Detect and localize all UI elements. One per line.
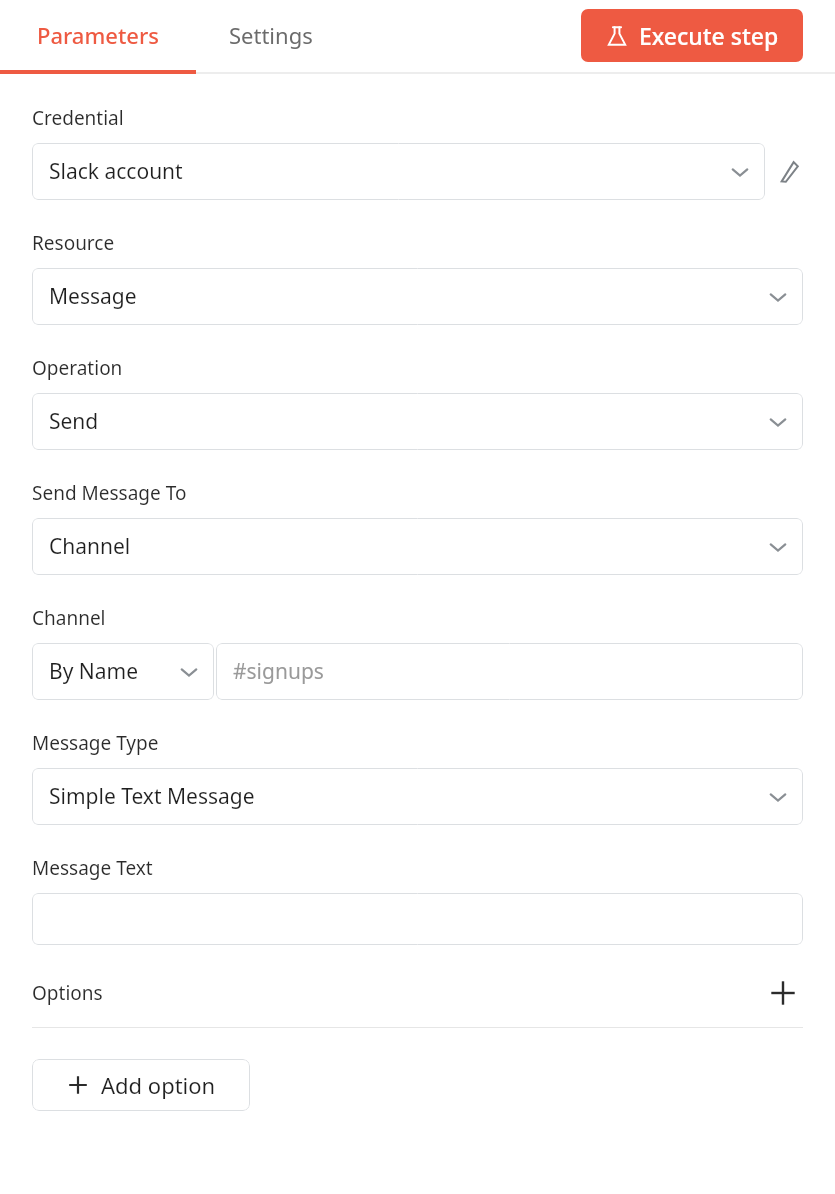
staticText: Settings [229, 20, 313, 50]
staticText: Simple Text Message [49, 782, 765, 811]
button[interactable]: Message [32, 268, 803, 325]
button[interactable]: Channel [32, 518, 803, 575]
staticText: Message Text [32, 855, 153, 881]
staticText: Options [32, 980, 103, 1006]
button[interactable]: Simple Text Message [32, 768, 803, 825]
staticText: Slack account [49, 157, 727, 186]
staticText: Resource [32, 230, 115, 256]
staticText: Channel [49, 532, 765, 561]
button[interactable]: Parameters [0, 0, 196, 70]
staticText: #signups [233, 657, 324, 686]
staticText: Parameters [37, 20, 159, 50]
button[interactable]: Execute step [581, 9, 803, 62]
button[interactable]: Add option [763, 973, 803, 1013]
staticText: Credential [32, 105, 124, 131]
staticText: Operation [32, 355, 123, 381]
staticText: Send [49, 407, 765, 436]
button[interactable]: #signups [216, 643, 803, 700]
staticText: Channel [32, 605, 106, 631]
staticText: Message Type [32, 730, 159, 756]
staticText: By Name [49, 657, 176, 686]
staticText: Execute step [639, 20, 779, 51]
button[interactable]: Edit credential [777, 152, 803, 192]
staticText: Message [49, 282, 765, 311]
staticText: Send Message To [32, 480, 187, 506]
button[interactable] [32, 893, 803, 945]
staticText: Add option [101, 1070, 216, 1100]
button[interactable]: Send [32, 393, 803, 450]
button[interactable]: Slack account [32, 143, 765, 200]
button[interactable]: Add option [32, 1059, 250, 1111]
button[interactable]: Settings [196, 0, 346, 70]
button[interactable]: By Name [32, 643, 214, 700]
